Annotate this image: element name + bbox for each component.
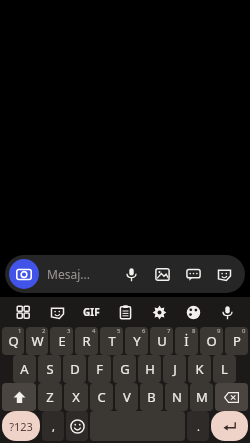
- staticText: F: [96, 360, 103, 378]
- staticText: .: [197, 419, 200, 434]
- staticText: 8: [192, 327, 196, 335]
- staticText: E: [58, 332, 66, 350]
- staticText: 6: [142, 327, 146, 335]
- staticText: U: [157, 332, 167, 350]
- button[interactable]: Camera: [9, 259, 39, 289]
- staticText: M: [196, 388, 208, 406]
- button[interactable]: Stickers: [182, 263, 204, 285]
- staticText: C: [97, 388, 106, 406]
- staticText: D: [70, 360, 80, 378]
- button[interactable]: H: [138, 355, 161, 383]
- button[interactable]: W: [26, 327, 48, 355]
- button[interactable]: J: [163, 355, 186, 383]
- button[interactable]: Q: [2, 327, 24, 355]
- button[interactable]: S: [38, 355, 61, 383]
- staticText: K: [195, 360, 204, 378]
- staticText: 4: [92, 327, 96, 335]
- staticText: 9: [217, 327, 221, 335]
- staticText: A: [20, 360, 29, 378]
- staticText: Z: [46, 388, 54, 406]
- staticText: 7: [167, 327, 171, 335]
- staticText: B: [147, 388, 156, 406]
- button[interactable]: Emoji: [66, 411, 88, 441]
- staticText: 2: [42, 327, 46, 335]
- button[interactable]: E: [50, 327, 73, 355]
- button[interactable]: R: [75, 327, 98, 355]
- button[interactable]: C: [90, 383, 113, 411]
- button[interactable]: N: [165, 383, 188, 411]
- button[interactable]: X: [64, 383, 88, 411]
- button[interactable]: Y: [125, 327, 148, 355]
- staticText: X: [72, 388, 80, 406]
- staticText: 0: [242, 327, 246, 335]
- staticText: L: [221, 360, 228, 378]
- button[interactable]: Voice: [120, 263, 142, 285]
- button[interactable]: GIF: [74, 297, 108, 327]
- staticText: H: [145, 360, 155, 378]
- button[interactable]: P: [225, 327, 248, 355]
- staticText: N: [172, 388, 182, 406]
- button[interactable]: Enter: [211, 411, 248, 441]
- button[interactable]: L: [213, 355, 236, 383]
- button[interactable]: Apps: [6, 297, 40, 327]
- button[interactable]: İ: [175, 327, 198, 355]
- button[interactable]: M: [190, 383, 213, 411]
- button[interactable]: Emoji: [213, 263, 235, 285]
- staticText: P: [233, 332, 241, 350]
- button[interactable]: T: [100, 327, 123, 355]
- button[interactable]: D: [63, 355, 86, 383]
- staticText: İ: [184, 332, 189, 350]
- staticText: J: [173, 360, 177, 378]
- staticText: T: [108, 332, 116, 350]
- staticText: GIF: [83, 305, 100, 319]
- button[interactable]: .: [187, 411, 209, 441]
- staticText: 3: [67, 327, 71, 335]
- button[interactable]: A: [13, 355, 36, 383]
- button[interactable]: U: [150, 327, 173, 355]
- staticText: G: [120, 360, 130, 378]
- button[interactable]: F: [88, 355, 111, 383]
- staticText: R: [82, 332, 91, 350]
- staticText: V: [123, 388, 131, 406]
- button[interactable]: B: [140, 383, 163, 411]
- staticText: Y: [133, 332, 141, 350]
- staticText: O: [206, 332, 217, 350]
- button[interactable]: ?123: [2, 411, 40, 441]
- staticText: W: [31, 332, 44, 350]
- button[interactable]: Sticker: [40, 297, 74, 327]
- button[interactable]: Backspace: [215, 383, 248, 411]
- button[interactable]: Theme: [176, 297, 210, 327]
- staticText: S: [46, 360, 54, 378]
- button[interactable]: Z: [38, 383, 62, 411]
- button[interactable]: G: [113, 355, 136, 383]
- button[interactable]: Gallery: [151, 263, 173, 285]
- button[interactable]: V: [115, 383, 138, 411]
- button[interactable]: Shift: [2, 383, 36, 411]
- staticText: Q: [8, 332, 19, 350]
- button[interactable]: ,: [42, 411, 64, 441]
- staticText: ,: [52, 419, 55, 434]
- staticText: 5: [117, 327, 121, 335]
- button[interactable]: O: [200, 327, 223, 355]
- staticText: ?123: [9, 419, 33, 434]
- button[interactable]: Settings: [142, 297, 176, 327]
- button[interactable]: Voice input: [210, 297, 244, 327]
- button[interactable]: Clipboard: [108, 297, 142, 327]
- staticText: Mesaj...: [47, 266, 90, 282]
- staticText: 1: [18, 327, 22, 335]
- button[interactable]: K: [188, 355, 211, 383]
